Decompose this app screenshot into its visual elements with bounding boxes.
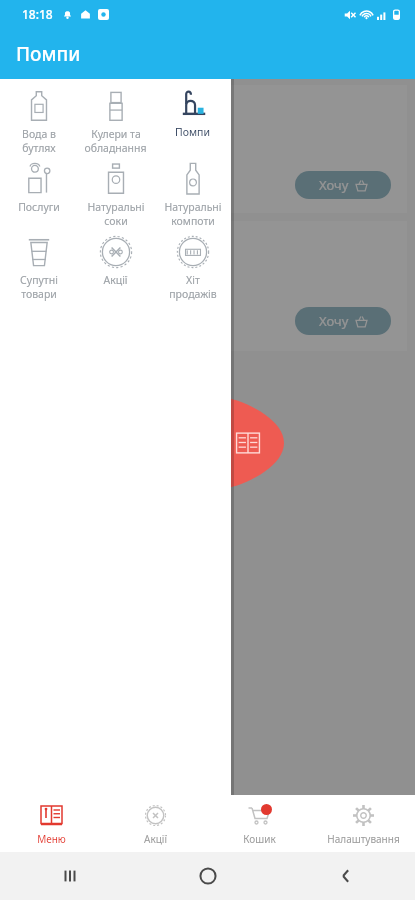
staticText: товари (21, 287, 57, 301)
staticText: компоти (171, 214, 215, 228)
button[interactable]: Меню (228, 398, 284, 488)
staticText: соки (104, 214, 128, 228)
staticText: Хочу (319, 312, 349, 330)
staticText: продажів (169, 287, 217, 301)
button[interactable]: Хочу (295, 307, 391, 335)
staticText: бутлях (22, 141, 56, 155)
staticText: Помпи (16, 41, 81, 67)
button[interactable]: Кошик (207, 795, 311, 852)
button[interactable]: Кулери та (77, 85, 154, 158)
staticText: Кулери та (91, 127, 141, 141)
staticText: Помпа AQUAVIVIO E7 White (18, 116, 204, 135)
staticText: Послуги (18, 200, 60, 214)
staticText: Акції (144, 832, 167, 846)
button[interactable]: Натуральні (77, 158, 154, 231)
staticText: Помпи (175, 125, 210, 139)
staticText: Натуральні (164, 200, 222, 214)
button[interactable]: Послуги (0, 158, 77, 231)
staticText: Кошик (243, 832, 276, 846)
staticText: обладнання (84, 141, 147, 155)
button[interactable]: Вода в (0, 85, 77, 158)
staticText: Супутні (20, 273, 58, 287)
button[interactable]: Хочу (295, 171, 391, 199)
other: Home (199, 867, 217, 885)
button[interactable]: Налаштування (311, 795, 415, 852)
button[interactable]: Меню (0, 795, 103, 852)
button[interactable]: Акції (77, 231, 154, 304)
staticText: Налаштування (327, 832, 400, 846)
button[interactable]: Акції (103, 795, 207, 852)
button[interactable]: Помпи (154, 85, 231, 158)
staticText: Акції (103, 273, 128, 287)
staticText: Помпа механічна "Lilu" (18, 243, 176, 262)
button[interactable]: Натуральні (154, 158, 231, 231)
staticText: Вода в (22, 127, 56, 141)
staticText: Хіт (186, 273, 200, 287)
staticText: Меню (37, 832, 66, 846)
staticText: 18:18 (22, 6, 53, 22)
other: Back (337, 867, 355, 885)
button[interactable]: Супутні (0, 231, 77, 304)
button[interactable]: Хіт (154, 231, 231, 304)
other: Recents (61, 867, 79, 885)
staticText: Хочу (319, 176, 349, 194)
staticText: Натуральні (87, 200, 145, 214)
staticText: Помпи для води (18, 97, 131, 116)
